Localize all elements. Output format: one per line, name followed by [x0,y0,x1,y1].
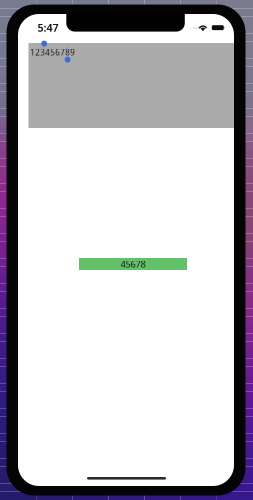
button[interactable]: 45678 [79,258,187,270]
staticText: 123456789 [30,47,75,58]
staticText: 5:47 [38,21,59,35]
staticText: 45678 [120,258,145,270]
